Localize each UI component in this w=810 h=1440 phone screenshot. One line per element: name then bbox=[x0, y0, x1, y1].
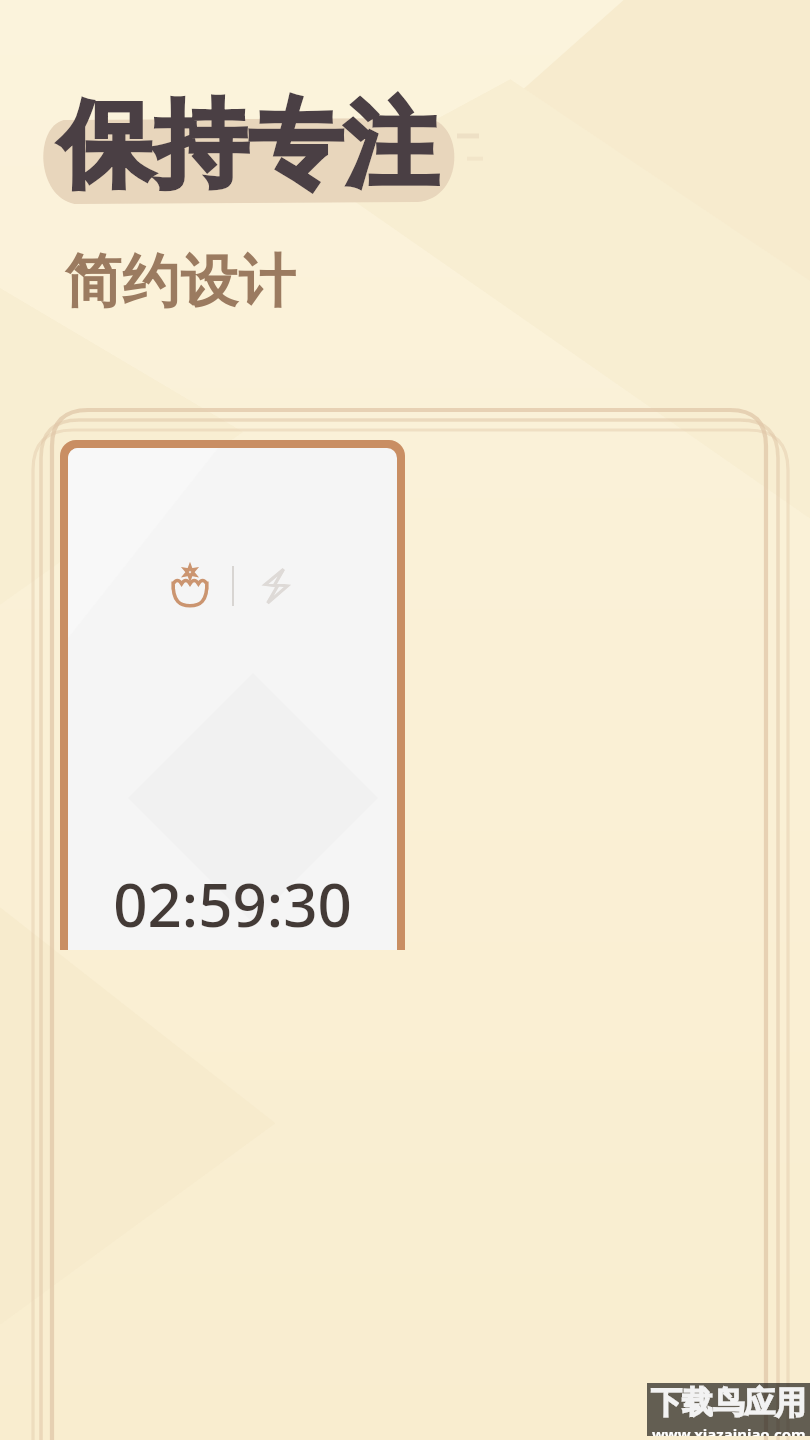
button[interactable]: 02:59:30 bbox=[113, 863, 352, 950]
staticText: www.xiazainiao.com bbox=[652, 1424, 806, 1436]
staticText: 简约设计 bbox=[64, 246, 296, 318]
staticText: 下载鸟应用 bbox=[651, 1383, 806, 1422]
staticText: 02:59:30 bbox=[113, 863, 352, 945]
button[interactable]: Flash mode bbox=[246, 556, 306, 616]
button[interactable]: Pomodoro mode bbox=[160, 556, 220, 616]
staticText: 保持专注 bbox=[58, 86, 438, 204]
